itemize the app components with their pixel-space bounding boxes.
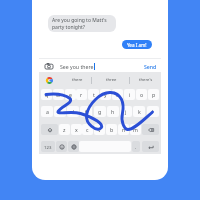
staticText: x xyxy=(75,126,78,133)
button[interactable]: 123 xyxy=(41,141,55,152)
button[interactable]: h xyxy=(107,106,119,117)
staticText: d xyxy=(71,108,75,115)
staticText: See you there xyxy=(60,63,94,70)
button[interactable]: Emoji xyxy=(56,141,67,152)
staticText: e xyxy=(69,91,72,98)
staticText: z xyxy=(63,126,66,133)
button[interactable]: o xyxy=(136,89,147,100)
button[interactable]: Yea I am! xyxy=(122,40,152,49)
button[interactable]: three xyxy=(100,76,122,84)
button[interactable]: . xyxy=(132,141,140,152)
staticText: m xyxy=(133,126,138,133)
staticText: three xyxy=(106,77,117,83)
button[interactable]: z xyxy=(59,124,70,135)
button[interactable]: r xyxy=(76,89,87,100)
button[interactable]: a xyxy=(41,106,53,117)
staticText: q xyxy=(45,91,49,98)
staticText: c xyxy=(86,126,89,133)
button[interactable]: f xyxy=(80,106,92,117)
staticText: h xyxy=(111,108,115,115)
button[interactable]: n xyxy=(118,124,129,135)
staticText: 123 xyxy=(44,144,52,150)
staticText: o xyxy=(140,91,144,98)
button[interactable]: Language xyxy=(68,141,79,152)
button[interactable]: Send xyxy=(142,61,158,71)
staticText: j xyxy=(125,108,127,115)
staticText: there xyxy=(72,77,83,83)
staticText: l xyxy=(152,108,154,115)
staticText: there's xyxy=(139,77,153,83)
staticText: b xyxy=(110,126,114,133)
button[interactable]: w xyxy=(53,89,64,100)
button[interactable]: i xyxy=(124,89,135,100)
staticText: a xyxy=(46,108,49,115)
button[interactable]: v xyxy=(94,124,105,135)
button[interactable]: p xyxy=(148,89,159,100)
button[interactable]: j xyxy=(120,106,132,117)
button[interactable]: s xyxy=(54,106,66,117)
button[interactable]: m xyxy=(130,124,141,135)
staticText: Send xyxy=(144,63,157,70)
button[interactable]: d xyxy=(67,106,79,117)
staticText: . xyxy=(135,144,137,150)
button[interactable]: y xyxy=(100,89,111,100)
staticText: u xyxy=(116,91,120,98)
staticText: i xyxy=(129,91,131,98)
staticText: f xyxy=(85,108,87,115)
button[interactable]: Camera xyxy=(44,61,54,71)
button[interactable]: k xyxy=(133,106,145,117)
staticText: s xyxy=(59,108,62,115)
button[interactable]: there xyxy=(66,76,88,84)
button[interactable]: Backspace xyxy=(142,124,159,135)
button[interactable]: g xyxy=(94,106,106,117)
button[interactable]: l xyxy=(147,106,159,117)
button[interactable]: Enter xyxy=(142,141,159,152)
button[interactable]: Shift xyxy=(41,124,58,135)
button[interactable]: e xyxy=(65,89,76,100)
button[interactable]: c xyxy=(82,124,93,135)
staticText: n xyxy=(122,126,126,133)
staticText: r xyxy=(80,91,83,98)
button[interactable]: x xyxy=(71,124,82,135)
button[interactable]: u xyxy=(112,89,123,100)
button[interactable]: there's xyxy=(135,76,157,84)
staticText: t xyxy=(93,91,95,98)
staticText: g xyxy=(98,108,102,115)
staticText: w xyxy=(56,91,61,98)
staticText: v xyxy=(98,126,101,133)
button[interactable]: t xyxy=(88,89,99,100)
staticText: Are you going to Matt's party tonight? xyxy=(52,17,107,31)
button[interactable]: Are you going to Matt's party tonight? xyxy=(48,15,116,32)
button[interactable]: b xyxy=(106,124,117,135)
staticText: Yea I am! xyxy=(127,42,147,48)
staticText: p xyxy=(152,91,156,98)
button[interactable]: q xyxy=(41,89,52,100)
staticText: y xyxy=(104,91,107,98)
staticText: k xyxy=(138,108,141,115)
